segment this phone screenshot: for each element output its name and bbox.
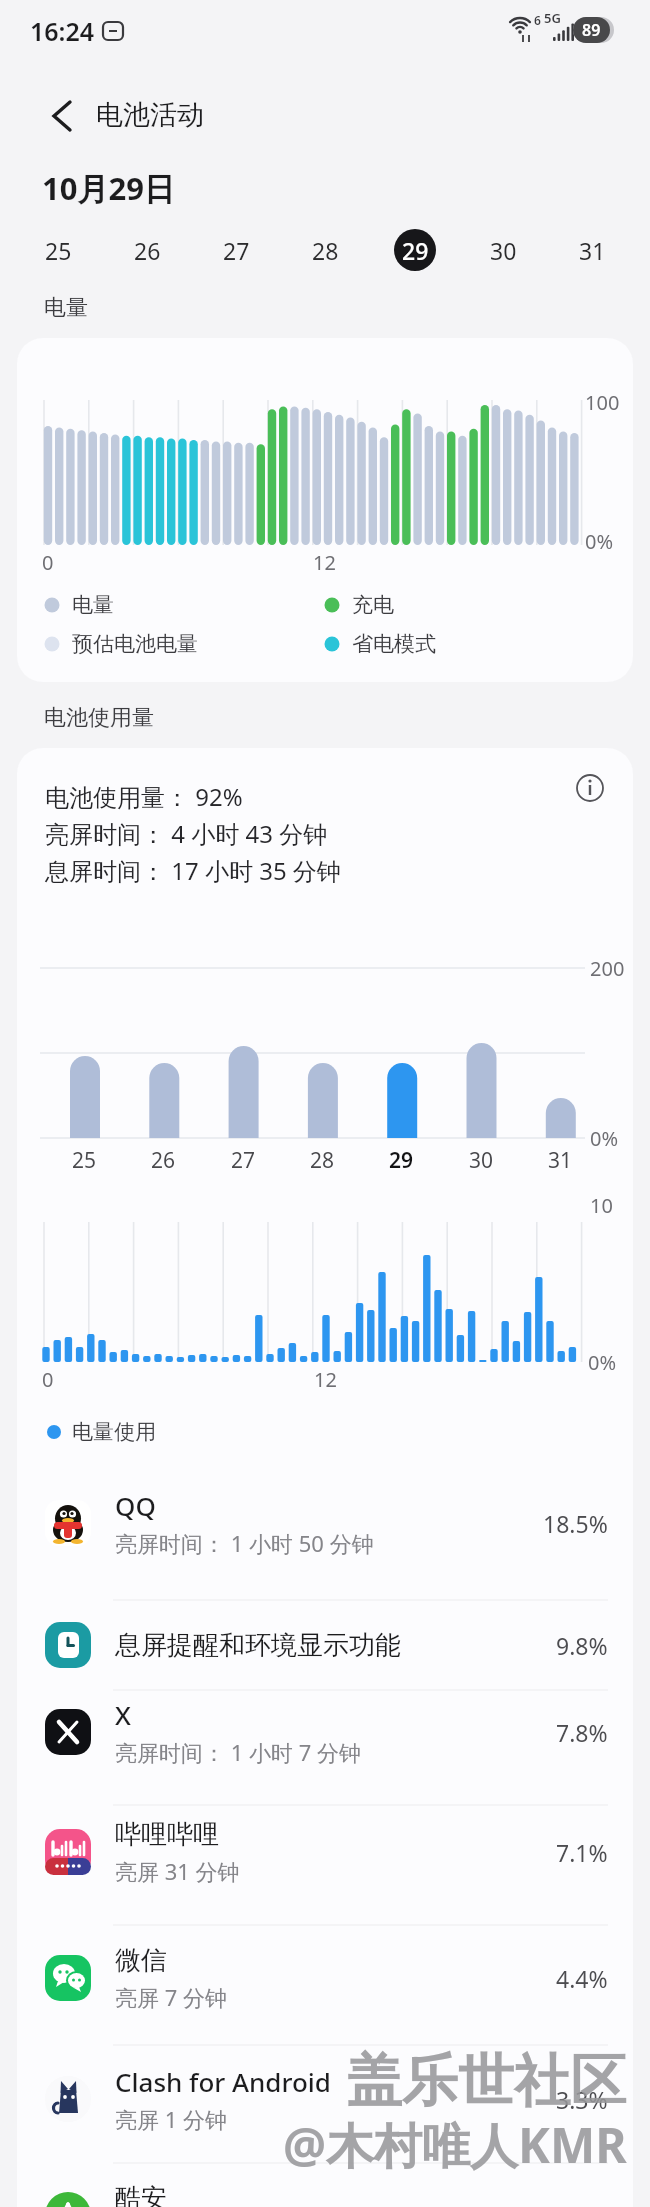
staticText: 亮屏 31 分钟: [115, 1856, 240, 1886]
staticText: 哔哩哔哩: [115, 1818, 219, 1851]
staticText: 31: [579, 235, 606, 266]
staticText: 28: [312, 235, 339, 266]
staticText: 电量使用: [72, 1419, 156, 1445]
staticText: 4.4%: [556, 1963, 608, 1994]
staticText: 16:24: [30, 14, 95, 48]
button[interactable]: 息屏提醒和环境显示功能: [17, 1600, 633, 1690]
staticText: 电池使用量: [44, 704, 154, 732]
staticText: 27: [231, 1146, 256, 1175]
button[interactable]: 28: [281, 222, 370, 278]
button[interactable]: 26: [103, 222, 192, 278]
staticText: 12: [314, 1366, 337, 1393]
staticText: 充电: [352, 592, 394, 618]
staticText: 100: [585, 389, 620, 416]
staticText: 电量: [44, 294, 88, 322]
staticText: 0: [42, 1366, 54, 1393]
button[interactable]: 25: [13, 222, 103, 278]
staticText: 亮屏时间： 1 小时 50 分钟: [115, 1528, 374, 1558]
button[interactable]: 哔哩哔哩: [17, 1792, 633, 1912]
staticText: 6: [534, 12, 541, 28]
button[interactable]: [44, 98, 80, 134]
staticText: 25: [72, 1146, 97, 1175]
staticText: 27: [223, 235, 250, 266]
staticText: 亮屏 1 分钟: [115, 2104, 228, 2134]
staticText: 0: [42, 549, 54, 576]
staticText: 亮屏时间： 1 小时 7 分钟: [115, 1737, 362, 1767]
button[interactable]: 29: [370, 222, 459, 278]
button[interactable]: 微信: [17, 1918, 633, 2038]
staticText: 微信: [115, 1944, 167, 1977]
staticText: 0%: [590, 1125, 619, 1152]
staticText: 10: [590, 1192, 613, 1219]
staticText: 30: [469, 1146, 494, 1175]
staticText: 省电模式: [352, 631, 436, 657]
button[interactable]: 酷安: [17, 2156, 633, 2207]
staticText: 3.3%: [556, 2084, 608, 2115]
staticText: 电池活动: [96, 98, 204, 132]
staticText: 电量: [72, 592, 114, 618]
staticText: 200: [590, 955, 625, 982]
button[interactable]: 30: [459, 222, 548, 278]
staticText: 28: [310, 1146, 335, 1175]
staticText: 亮屏时间： 4 小时 43 分钟: [45, 817, 328, 850]
staticText: 7.8%: [556, 1717, 608, 1748]
staticText: QQ: [115, 1488, 156, 1523]
staticText: 9.8%: [556, 1630, 608, 1661]
staticText: 29: [402, 235, 429, 266]
button[interactable]: QQ: [17, 1468, 633, 1578]
button[interactable]: Clash for Android: [17, 2040, 633, 2158]
button[interactable]: X: [17, 1676, 633, 1788]
staticText: 酷安: [115, 2182, 167, 2207]
staticText: X: [115, 1697, 131, 1732]
staticText: 息屏时间： 17 小时 35 分钟: [45, 854, 341, 887]
staticText: 29: [389, 1146, 414, 1175]
staticText: @木村唯人KMR: [283, 2112, 627, 2178]
staticText: 18.5%: [543, 1508, 608, 1539]
staticText: 7.1%: [556, 1837, 608, 1868]
button[interactable]: 31: [548, 222, 637, 278]
staticText: 12: [313, 549, 336, 576]
staticText: 26: [151, 1146, 176, 1175]
staticText: 0%: [585, 528, 614, 555]
button[interactable]: 27: [192, 222, 281, 278]
staticText: 30: [490, 235, 517, 266]
staticText: 预估电池电量: [72, 631, 198, 657]
staticText: 26: [134, 235, 161, 266]
staticText: 25: [45, 235, 72, 266]
staticText: 盖乐世社区: [346, 2046, 626, 2117]
staticText: 5G: [544, 9, 561, 27]
staticText: 亮屏 7 分钟: [115, 1982, 228, 2012]
staticText: 10月29日: [42, 167, 175, 209]
staticText: 0%: [588, 1349, 617, 1376]
staticText: 31: [548, 1146, 573, 1175]
staticText: 89: [582, 19, 601, 41]
staticText: Clash for Android: [115, 2064, 331, 2099]
staticText: 电池使用量： 92%: [45, 780, 243, 813]
staticText: 息屏提醒和环境显示功能: [115, 1629, 401, 1662]
